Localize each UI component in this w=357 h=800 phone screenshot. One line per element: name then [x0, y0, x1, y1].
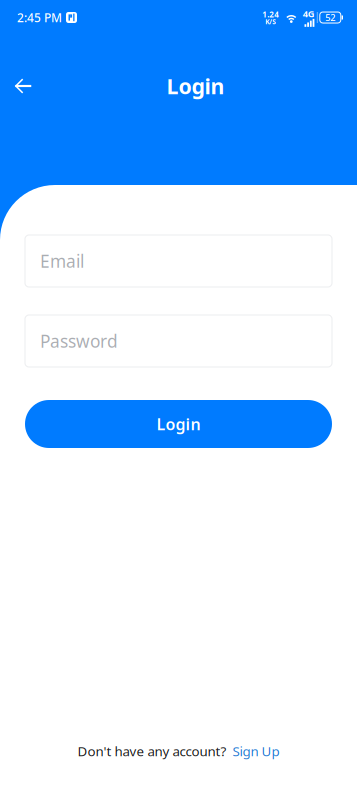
staticText: 2:45 PM — [17, 9, 62, 25]
button[interactable]: Back — [6, 64, 40, 108]
staticText: Login — [166, 72, 224, 100]
staticText: Login — [156, 413, 200, 435]
staticText: Email — [40, 249, 84, 272]
staticText: K/S — [265, 17, 276, 26]
staticText: Password — [40, 329, 118, 352]
button[interactable]: Sign Up — [232, 742, 279, 760]
button[interactable]: Login — [25, 400, 332, 448]
staticText: 1.24 — [262, 9, 279, 20]
staticText: Sign Up — [232, 742, 279, 760]
staticText: Don't have any account? — [77, 742, 226, 760]
staticText: 52 — [325, 11, 335, 24]
staticText: 4G — [303, 8, 315, 20]
